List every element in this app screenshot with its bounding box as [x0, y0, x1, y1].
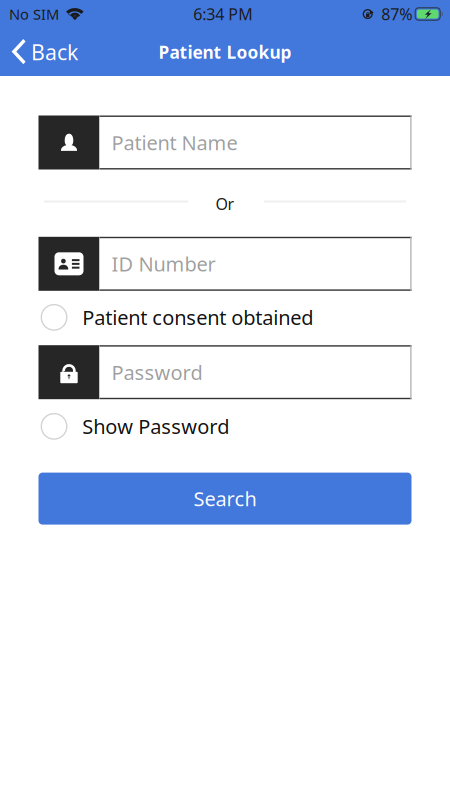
- staticText: Patient Lookup: [158, 40, 291, 63]
- button[interactable]: Show Password: [38, 407, 411, 447]
- staticText: ID Number: [111, 250, 215, 277]
- staticText: Back: [31, 38, 78, 66]
- button[interactable]: Back: [0, 28, 92, 76]
- button[interactable]: ID Number: [38, 237, 411, 291]
- staticText: Patient Name: [111, 129, 237, 156]
- staticText: 6:34 PM: [193, 3, 253, 25]
- button[interactable]: Patient Name: [38, 115, 411, 169]
- button[interactable]: Search: [38, 473, 411, 525]
- staticText: Password: [111, 359, 202, 385]
- button[interactable]: Patient consent obtained: [38, 298, 411, 338]
- button[interactable]: Password: [38, 345, 411, 399]
- staticText: Patient consent obtained: [82, 304, 313, 331]
- staticText: Or: [215, 193, 234, 214]
- staticText: Show Password: [82, 413, 229, 440]
- staticText: No SIM: [9, 4, 59, 24]
- staticText: Search: [193, 485, 256, 512]
- staticText: 87%: [381, 3, 412, 25]
